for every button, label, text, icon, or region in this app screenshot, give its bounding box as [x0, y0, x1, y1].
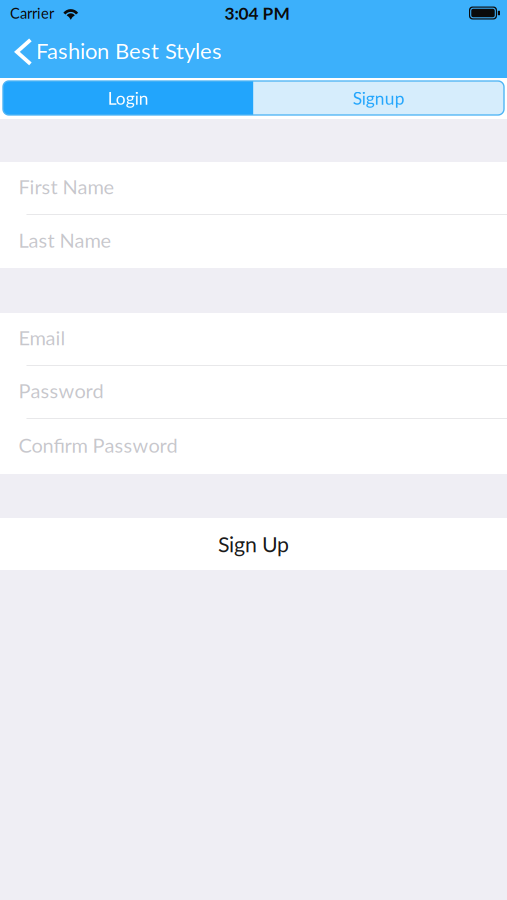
staticText: Confirm Password	[18, 433, 177, 457]
staticText: Signup	[353, 88, 405, 108]
staticText: Login	[108, 88, 149, 108]
staticText: Email	[18, 325, 65, 349]
button[interactable]: Last Name	[0, 215, 507, 268]
button[interactable]: Sign Up	[0, 518, 507, 570]
staticText: 3:04 PM	[224, 3, 289, 23]
button[interactable]: Confirm Password	[0, 419, 507, 474]
staticText: Password	[18, 378, 103, 402]
button[interactable]: First Name	[0, 162, 507, 214]
button[interactable]: Login	[3, 81, 253, 115]
button[interactable]: Password	[0, 366, 507, 418]
staticText: First Name	[18, 174, 114, 198]
button[interactable]: Email	[0, 313, 507, 365]
staticText: Fashion Best Styles	[36, 37, 222, 64]
staticText: Carrier	[10, 4, 54, 22]
button[interactable]: Fashion Best Styles	[0, 26, 232, 78]
staticText: Last Name	[18, 228, 111, 252]
staticText: Sign Up	[218, 531, 289, 557]
button[interactable]: Signup	[253, 81, 504, 115]
